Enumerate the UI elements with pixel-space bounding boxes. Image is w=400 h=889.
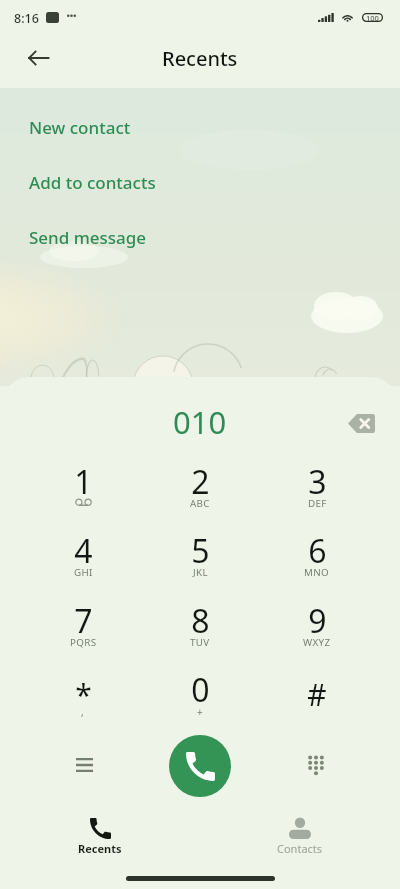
staticText: Send message [29,226,147,249]
staticText: 6 [308,529,327,573]
staticText: * [75,674,92,715]
staticText: 100 [366,13,379,22]
button[interactable]: # [273,656,361,718]
staticText: MNO [304,566,330,579]
button[interactable]: Dialpad [295,744,337,786]
button[interactable]: 9 [273,587,361,649]
staticText: New contact [29,116,131,139]
button[interactable]: 2 [156,448,244,510]
staticText: 8:16 [14,10,39,27]
staticText: # [307,674,327,715]
button[interactable]: Add to contacts [0,155,400,210]
button[interactable]: 5 [156,517,244,579]
button[interactable]: * [39,656,127,718]
staticText: 8 [191,599,210,643]
staticText: 3 [308,460,327,504]
button[interactable]: 7 [39,587,127,649]
staticText: Recents [162,45,238,72]
button[interactable]: Backspace [340,402,382,444]
button[interactable]: Contacts [200,805,400,889]
staticText: 5 [191,529,210,573]
staticText: 7 [74,599,93,643]
staticText: GHI [74,566,93,579]
button[interactable]: Call log [63,744,105,786]
staticText: DEF [308,497,327,510]
staticText: Recents [78,841,122,856]
button[interactable]: 3 [273,448,361,510]
staticText: 4 [74,529,93,573]
button[interactable]: 0 [156,656,244,718]
staticText: 010 [173,401,227,443]
staticText: JKL [193,566,208,579]
button[interactable]: 8 [156,587,244,649]
staticText: PQRS [70,636,97,649]
staticText: Contacts [277,841,323,856]
button[interactable]: Recents [0,805,200,889]
staticText: Add to contacts [29,171,156,194]
button[interactable]: 1 [39,448,127,510]
staticText: + [197,705,204,718]
staticText: WXYZ [303,636,331,649]
staticText: 1 [74,460,93,504]
button[interactable]: Send message [0,210,400,265]
staticText: 2 [191,460,210,504]
button[interactable]: 4 [39,517,127,579]
staticText: 0 [191,668,210,712]
staticText: 9 [308,599,327,643]
button[interactable]: Call [169,735,231,797]
staticText: TUV [190,636,210,649]
button[interactable]: 6 [273,517,361,579]
button[interactable]: Back [16,36,60,80]
staticText: ABC [190,497,210,510]
staticText: , [81,705,85,718]
button[interactable]: New contact [0,100,400,155]
